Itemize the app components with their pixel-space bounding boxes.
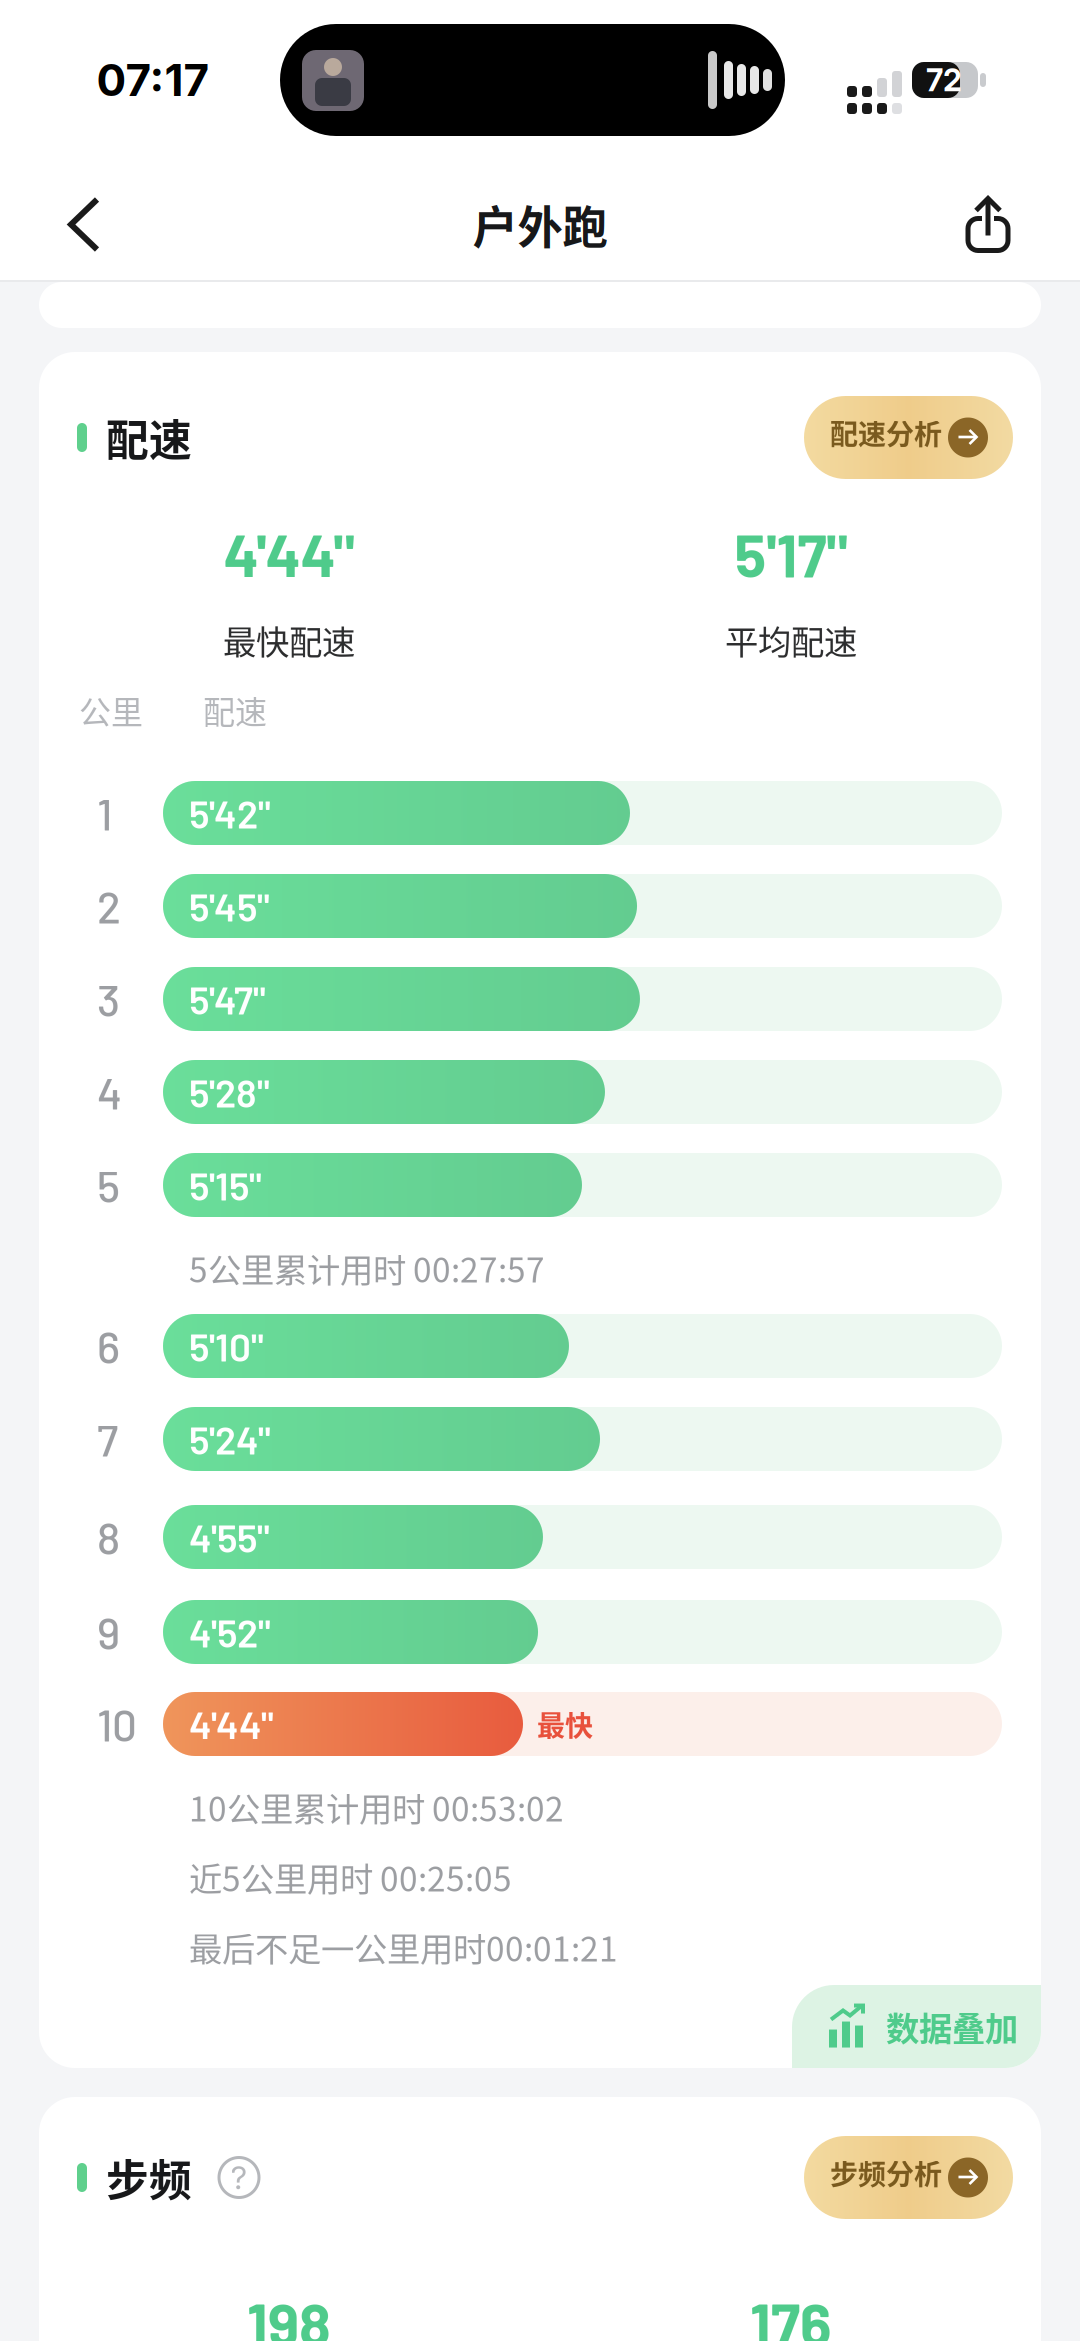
staticText: ? bbox=[230, 2158, 247, 2197]
staticText: 72 bbox=[926, 61, 962, 98]
staticText: 配速 bbox=[203, 687, 267, 733]
staticText: 5'28" bbox=[189, 1069, 270, 1115]
staticText: 9 bbox=[97, 1606, 120, 1658]
staticText: 7 bbox=[97, 1413, 118, 1465]
staticText: 平均配速 bbox=[725, 616, 857, 664]
staticText: 步频 bbox=[106, 2147, 192, 2208]
staticText: 4'44" bbox=[223, 519, 354, 589]
staticText: 4'55" bbox=[189, 1514, 270, 1560]
staticText: 5公里累计用时 00:27:57 bbox=[189, 1244, 545, 1292]
staticText: 2 bbox=[97, 880, 121, 932]
staticText: 步频分析 bbox=[830, 2152, 942, 2193]
staticText: 5'10" bbox=[189, 1323, 264, 1369]
button[interactable]: 配速分析 bbox=[804, 396, 1013, 479]
staticText: 数据叠加 bbox=[886, 2002, 1018, 2051]
staticText: 6 bbox=[97, 1320, 120, 1372]
staticText: 198 bbox=[247, 2288, 331, 2341]
staticText: 户外跑 bbox=[472, 192, 607, 257]
staticText: 公里 bbox=[79, 687, 143, 733]
staticText: 10公里累计用时 00:53:02 bbox=[189, 1783, 564, 1831]
staticText: 3 bbox=[97, 973, 120, 1025]
staticText: 5'47" bbox=[189, 976, 266, 1022]
staticText: 最快配速 bbox=[223, 616, 355, 664]
staticText: 配速分析 bbox=[830, 412, 942, 453]
staticText: 1 bbox=[97, 787, 112, 839]
staticText: 10 bbox=[97, 1698, 137, 1750]
button[interactable]: Back bbox=[26, 167, 142, 282]
staticText: 配速 bbox=[106, 407, 192, 468]
staticText: 4'52" bbox=[189, 1609, 271, 1655]
button[interactable]: 步频分析 bbox=[804, 2136, 1013, 2219]
staticText: 4'44" bbox=[189, 1701, 274, 1747]
staticText: 4 bbox=[97, 1066, 122, 1118]
staticText: 最后不足一公里用时00:01:21 bbox=[189, 1923, 618, 1971]
staticText: 5'42" bbox=[189, 790, 271, 836]
staticText: 5'17" bbox=[734, 519, 847, 589]
staticText: 最快 bbox=[537, 1704, 593, 1744]
staticText: 07:17 bbox=[96, 53, 209, 107]
staticText: 5'24" bbox=[189, 1416, 271, 1462]
staticText: 5'15" bbox=[189, 1162, 262, 1208]
button[interactable]: 数据叠加 bbox=[792, 1985, 1042, 2068]
staticText: 176 bbox=[750, 2288, 832, 2341]
staticText: 5'45" bbox=[189, 883, 270, 929]
staticText: 8 bbox=[97, 1511, 120, 1563]
staticText: 近5公里用时 00:25:05 bbox=[189, 1853, 512, 1901]
staticText: 5 bbox=[97, 1159, 120, 1211]
button[interactable]: Share bbox=[930, 167, 1046, 282]
